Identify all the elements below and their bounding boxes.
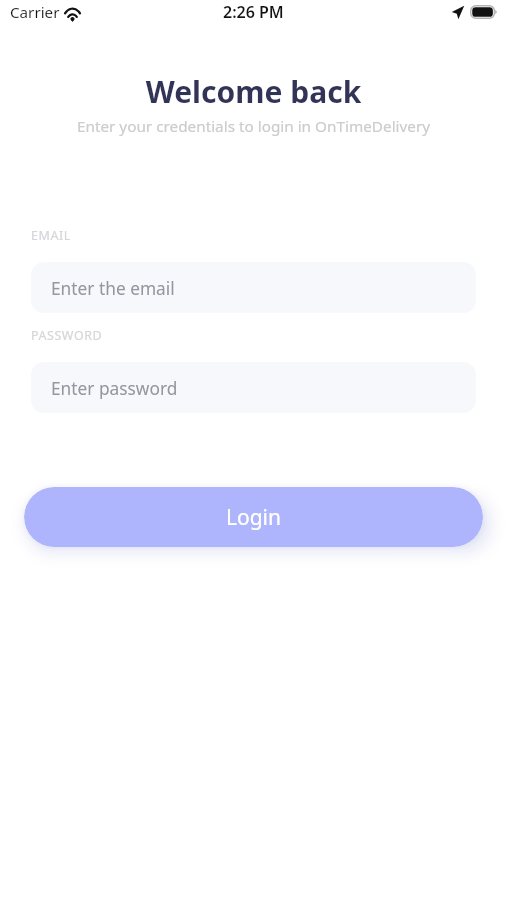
other: Battery bbox=[470, 5, 497, 19]
button[interactable]: Enter the email bbox=[31, 262, 476, 313]
button[interactable]: Login bbox=[24, 487, 483, 547]
staticText: Login bbox=[226, 503, 282, 532]
other: Wifi bbox=[63, 5, 82, 21]
staticText: Welcome back bbox=[0, 71, 507, 112]
staticText: 2:26 PM bbox=[223, 1, 284, 23]
staticText: Carrier bbox=[10, 2, 60, 23]
staticText: EMAIL bbox=[31, 227, 71, 244]
staticText: Enter password bbox=[51, 377, 178, 401]
staticText: Enter the email bbox=[51, 277, 175, 301]
button[interactable]: Enter password bbox=[31, 362, 476, 413]
staticText: PASSWORD bbox=[31, 327, 103, 344]
other: Location bbox=[452, 6, 464, 19]
staticText: Enter your credentials to login in OnTim… bbox=[0, 116, 507, 137]
